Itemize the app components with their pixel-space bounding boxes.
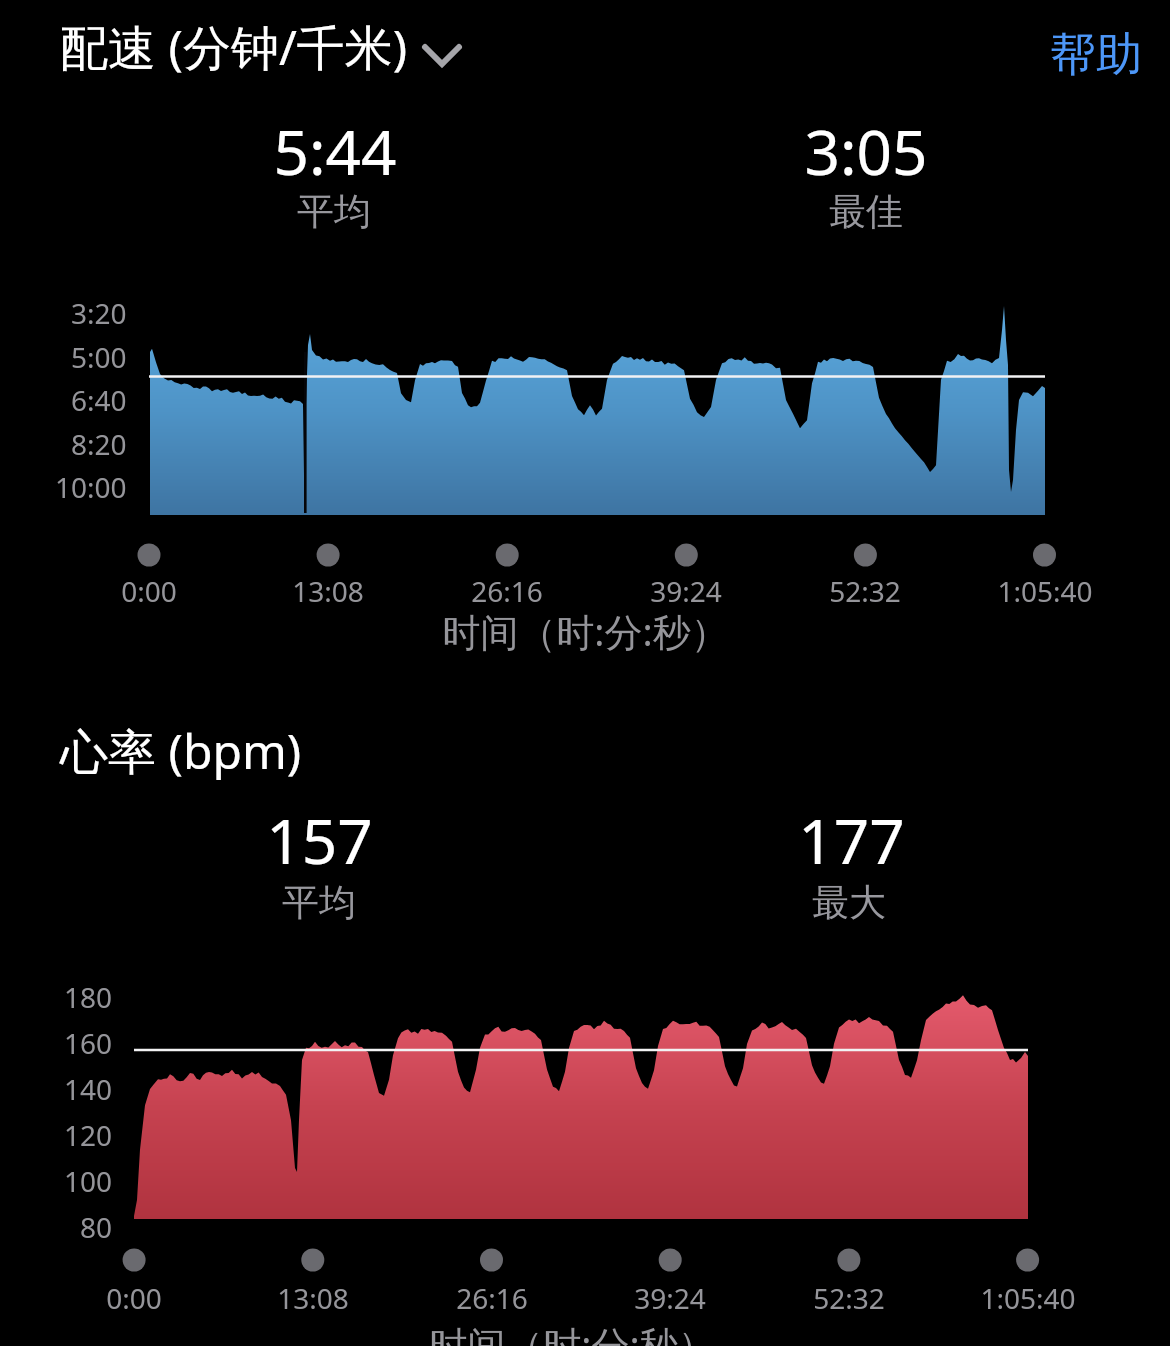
staticText: 时间（时:分:秒）: [442, 605, 729, 657]
staticText: 39:24: [650, 572, 722, 610]
staticText: 6:40: [71, 381, 127, 419]
staticText: 26:16: [471, 572, 543, 610]
staticText: 最大: [812, 879, 886, 926]
staticText: 配速 (分钟/千米): [60, 14, 408, 80]
staticText: 5:44: [273, 109, 397, 193]
staticText: 3:05: [804, 109, 928, 193]
staticText: 39:24: [634, 1279, 706, 1317]
staticText: 5:00: [71, 338, 127, 376]
staticText: 0:00: [106, 1279, 162, 1317]
staticText: 10:00: [55, 468, 127, 506]
button[interactable]: 帮助: [1012, 20, 1142, 90]
staticText: 0:00: [121, 572, 177, 610]
staticText: 13:08: [277, 1279, 349, 1317]
staticText: 100: [64, 1162, 113, 1200]
staticText: 26:16: [456, 1279, 528, 1317]
staticText: 平均: [282, 879, 356, 926]
staticText: 160: [64, 1024, 113, 1062]
staticText: 帮助: [1050, 26, 1142, 84]
staticText: 80: [80, 1208, 113, 1246]
staticText: 1:05:40: [980, 1279, 1076, 1317]
staticText: 心率 (bpm): [60, 718, 302, 784]
staticText: 157: [266, 798, 373, 882]
staticText: 52:32: [829, 572, 901, 610]
staticText: 180: [64, 978, 113, 1016]
staticText: 140: [64, 1070, 113, 1108]
button[interactable]: 配速 (分钟/千米): [0, 0, 400, 90]
staticText: 平均: [297, 188, 371, 235]
staticText: 8:20: [71, 425, 127, 463]
staticText: 1:05:40: [997, 572, 1093, 610]
staticText: 3:20: [71, 294, 127, 332]
staticText: 120: [64, 1116, 113, 1154]
staticText: 最佳: [829, 188, 903, 235]
staticText: 13:08: [292, 572, 364, 610]
staticText: 时间（时:分:秒）: [429, 1318, 716, 1346]
staticText: 177: [798, 798, 905, 882]
staticText: 52:32: [813, 1279, 885, 1317]
